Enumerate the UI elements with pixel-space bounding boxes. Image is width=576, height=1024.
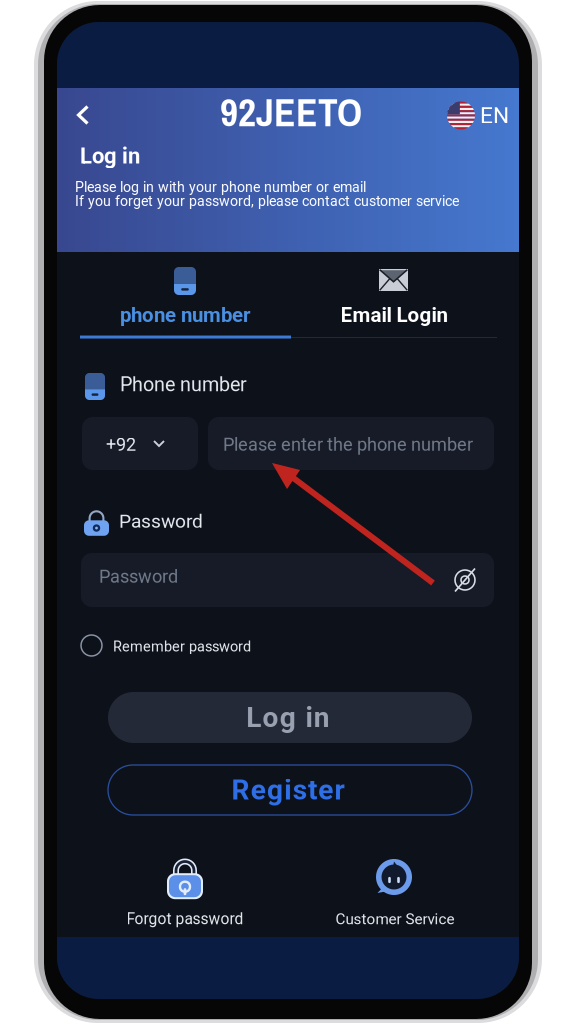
- staticText: Password: [99, 566, 178, 587]
- staticText: phone number: [120, 303, 250, 327]
- staticText: Email Login: [340, 303, 448, 327]
- staticText: Please log in with your phone number or …: [75, 179, 366, 196]
- staticText: Password: [119, 510, 203, 532]
- staticText: 92JEETO: [220, 85, 362, 138]
- staticText: Phone number: [120, 373, 247, 396]
- button[interactable]: Please enter the phone number: [208, 417, 494, 470]
- button[interactable]: +92: [82, 417, 198, 470]
- button[interactable]: Customer Service: [314, 858, 474, 933]
- staticText: +92: [106, 434, 136, 455]
- button[interactable]: phone number: [80, 267, 291, 342]
- button[interactable]: Log in: [108, 692, 472, 743]
- staticText: If you forget your password, please cont…: [75, 193, 459, 210]
- button[interactable]: Email Login: [290, 267, 497, 342]
- button[interactable]: Password: [81, 553, 494, 607]
- staticText: Customer Service: [335, 910, 454, 928]
- button[interactable]: Forgot password: [105, 858, 265, 933]
- staticText: Log in: [80, 143, 140, 169]
- button[interactable]: Remember password: [81, 633, 281, 659]
- staticText: Please enter the phone number: [223, 434, 473, 455]
- staticText: Forgot password: [126, 910, 243, 928]
- staticText: EN: [480, 102, 509, 129]
- staticText: Register: [231, 774, 345, 806]
- button[interactable]: Register: [108, 765, 472, 815]
- button[interactable]: Back: [62, 94, 104, 136]
- button[interactable]: Language English: [447, 98, 509, 132]
- staticText: Remember password: [113, 638, 251, 655]
- staticText: Log in: [246, 701, 330, 734]
